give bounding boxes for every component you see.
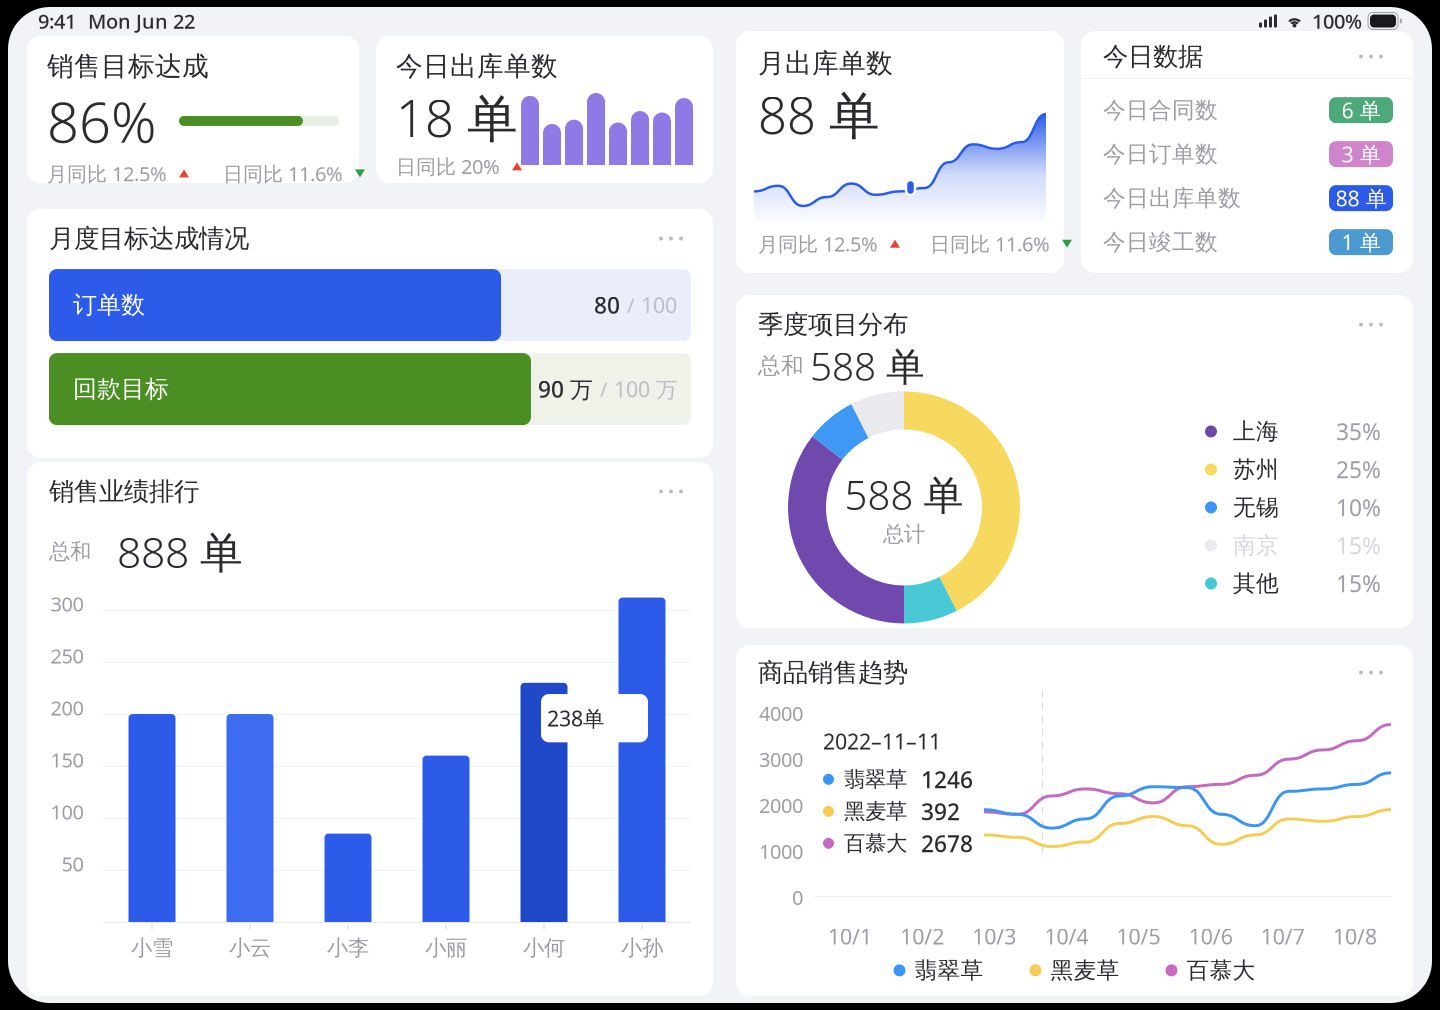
staticText: 3000 bbox=[759, 746, 803, 772]
staticText: 3 单 bbox=[1341, 140, 1380, 168]
staticText: 今日数据 bbox=[1103, 41, 1203, 72]
staticText: 1246 bbox=[921, 764, 973, 794]
staticText: 销售目标达成 bbox=[47, 50, 209, 83]
staticText: 今日合同数 bbox=[1103, 96, 1218, 124]
staticText: 苏州 bbox=[1233, 455, 1279, 483]
staticText: 200 bbox=[50, 694, 83, 721]
staticText: / bbox=[600, 376, 607, 402]
button[interactable]: More options bbox=[651, 227, 691, 251]
staticText: 588 单 bbox=[810, 340, 925, 391]
staticText: 小雪 bbox=[131, 935, 173, 961]
staticText: 1 单 bbox=[1341, 228, 1380, 256]
button[interactable]: 今日出库单数 bbox=[1081, 176, 1413, 220]
staticText: 888 单 bbox=[117, 523, 243, 580]
staticText: 100 bbox=[641, 291, 677, 319]
staticText: 2022–11–11 bbox=[823, 727, 941, 755]
button[interactable]: More options bbox=[1351, 313, 1391, 337]
staticText: 10/2 bbox=[900, 922, 944, 950]
staticText: 0 bbox=[792, 884, 803, 910]
staticText: 百慕大 bbox=[844, 830, 907, 856]
button[interactable]: 今日竣工数 bbox=[1081, 220, 1413, 264]
staticText: 25% bbox=[1336, 454, 1381, 484]
staticText: 1000 bbox=[759, 838, 803, 864]
staticText: 10/5 bbox=[1117, 922, 1161, 950]
staticText: 日同比 20% bbox=[396, 153, 500, 180]
staticText: 商品销售趋势 bbox=[758, 657, 908, 688]
staticText: 150 bbox=[50, 746, 83, 773]
staticText: 总计 bbox=[883, 521, 925, 547]
staticText: 250 bbox=[50, 642, 83, 669]
staticText: 90 万 bbox=[538, 374, 593, 404]
staticText: 6 单 bbox=[1341, 96, 1380, 124]
staticText: 上海 bbox=[1233, 417, 1279, 445]
staticText: 翡翠草 bbox=[914, 956, 983, 984]
staticText: 季度项目分布 bbox=[758, 309, 908, 340]
button[interactable]: More options bbox=[1351, 45, 1391, 69]
staticText: 今日竣工数 bbox=[1103, 228, 1218, 256]
staticText: 88 单 bbox=[758, 81, 880, 148]
staticText: 18 单 bbox=[396, 84, 518, 151]
staticText: 黑麦草 bbox=[1050, 956, 1119, 984]
staticText: 小李 bbox=[327, 935, 369, 961]
staticText: 10/3 bbox=[972, 922, 1016, 950]
staticText: 2000 bbox=[759, 792, 803, 818]
staticText: 9:41 bbox=[38, 8, 76, 34]
staticText: 88 单 bbox=[1335, 184, 1386, 212]
staticText: 10% bbox=[1336, 492, 1381, 522]
staticText: 百慕大 bbox=[1186, 956, 1255, 984]
staticText: 销售业绩排行 bbox=[49, 476, 199, 507]
staticText: 月出库单数 bbox=[758, 47, 893, 80]
staticText: 小丽 bbox=[425, 935, 467, 961]
staticText: / bbox=[627, 292, 634, 318]
staticText: 100 万 bbox=[614, 375, 677, 403]
staticText: 10/1 bbox=[828, 922, 872, 950]
staticText: 588 单 bbox=[844, 468, 963, 521]
staticText: 238单 bbox=[547, 704, 604, 732]
button[interactable]: More options bbox=[651, 480, 691, 504]
staticText: 4000 bbox=[759, 700, 803, 726]
staticText: 月同比 12.5% bbox=[758, 230, 878, 257]
staticText: 35% bbox=[1336, 416, 1381, 446]
staticText: 小何 bbox=[523, 935, 565, 961]
button[interactable]: 今日订单数 bbox=[1081, 132, 1413, 176]
staticText: 今日出库单数 bbox=[1103, 184, 1241, 212]
staticText: 392 bbox=[921, 796, 960, 826]
button[interactable]: 今日合同数 bbox=[1081, 88, 1413, 132]
staticText: 15% bbox=[1336, 530, 1381, 560]
staticText: 无锡 bbox=[1233, 493, 1279, 521]
staticText: Mon Jun 22 bbox=[88, 8, 195, 34]
staticText: 今日订单数 bbox=[1103, 140, 1218, 168]
staticText: 日同比 11.6% bbox=[223, 160, 343, 187]
staticText: 总和 bbox=[758, 352, 804, 380]
staticText: 2678 bbox=[921, 828, 973, 858]
staticText: 86% bbox=[47, 84, 156, 158]
staticText: 总和 bbox=[49, 538, 91, 564]
staticText: 黑麦草 bbox=[844, 798, 907, 824]
staticText: 300 bbox=[50, 590, 83, 617]
staticText: 小孙 bbox=[621, 935, 663, 961]
staticText: 翡翠草 bbox=[844, 766, 907, 792]
staticText: 50 bbox=[61, 850, 83, 877]
staticText: 小云 bbox=[229, 935, 271, 961]
staticText: 回款目标 bbox=[73, 374, 169, 404]
staticText: 10/6 bbox=[1189, 922, 1233, 950]
staticText: 其他 bbox=[1233, 569, 1279, 597]
button[interactable]: More options bbox=[1351, 661, 1391, 685]
staticText: 月度目标达成情况 bbox=[49, 223, 249, 254]
staticText: 80 bbox=[594, 290, 620, 320]
staticText: 15% bbox=[1336, 568, 1381, 598]
staticText: 订单数 bbox=[73, 290, 145, 320]
staticText: 100% bbox=[1312, 8, 1362, 34]
staticText: 月同比 12.5% bbox=[47, 160, 167, 187]
staticText: 今日出库单数 bbox=[396, 50, 558, 83]
staticText: 南京 bbox=[1233, 531, 1279, 559]
staticText: 10/4 bbox=[1044, 922, 1088, 950]
staticText: 10/8 bbox=[1333, 922, 1377, 950]
staticText: 日同比 11.6% bbox=[930, 230, 1050, 257]
staticText: 10/7 bbox=[1261, 922, 1305, 950]
staticText: 100 bbox=[50, 798, 83, 825]
